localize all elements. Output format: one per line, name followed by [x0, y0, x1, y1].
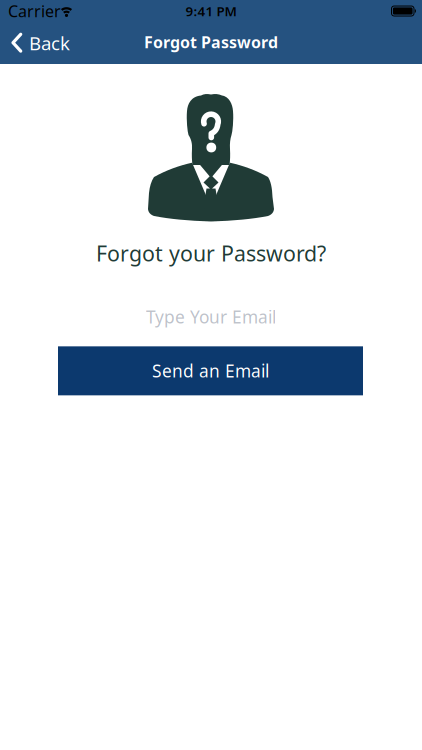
staticText: Back	[29, 31, 70, 55]
staticText: 9:41 PM	[185, 2, 236, 20]
staticText: Carrier	[8, 0, 61, 22]
button[interactable]: Type Your Email	[146, 305, 276, 328]
staticText: Send an Email	[152, 359, 269, 382]
staticText: Type Your Email	[146, 305, 276, 328]
staticText: Forgot your Password?	[96, 239, 326, 267]
staticText: Forgot Password	[144, 31, 278, 53]
button[interactable]: Send an Email	[58, 346, 363, 395]
button[interactable]: Back	[0, 31, 70, 55]
